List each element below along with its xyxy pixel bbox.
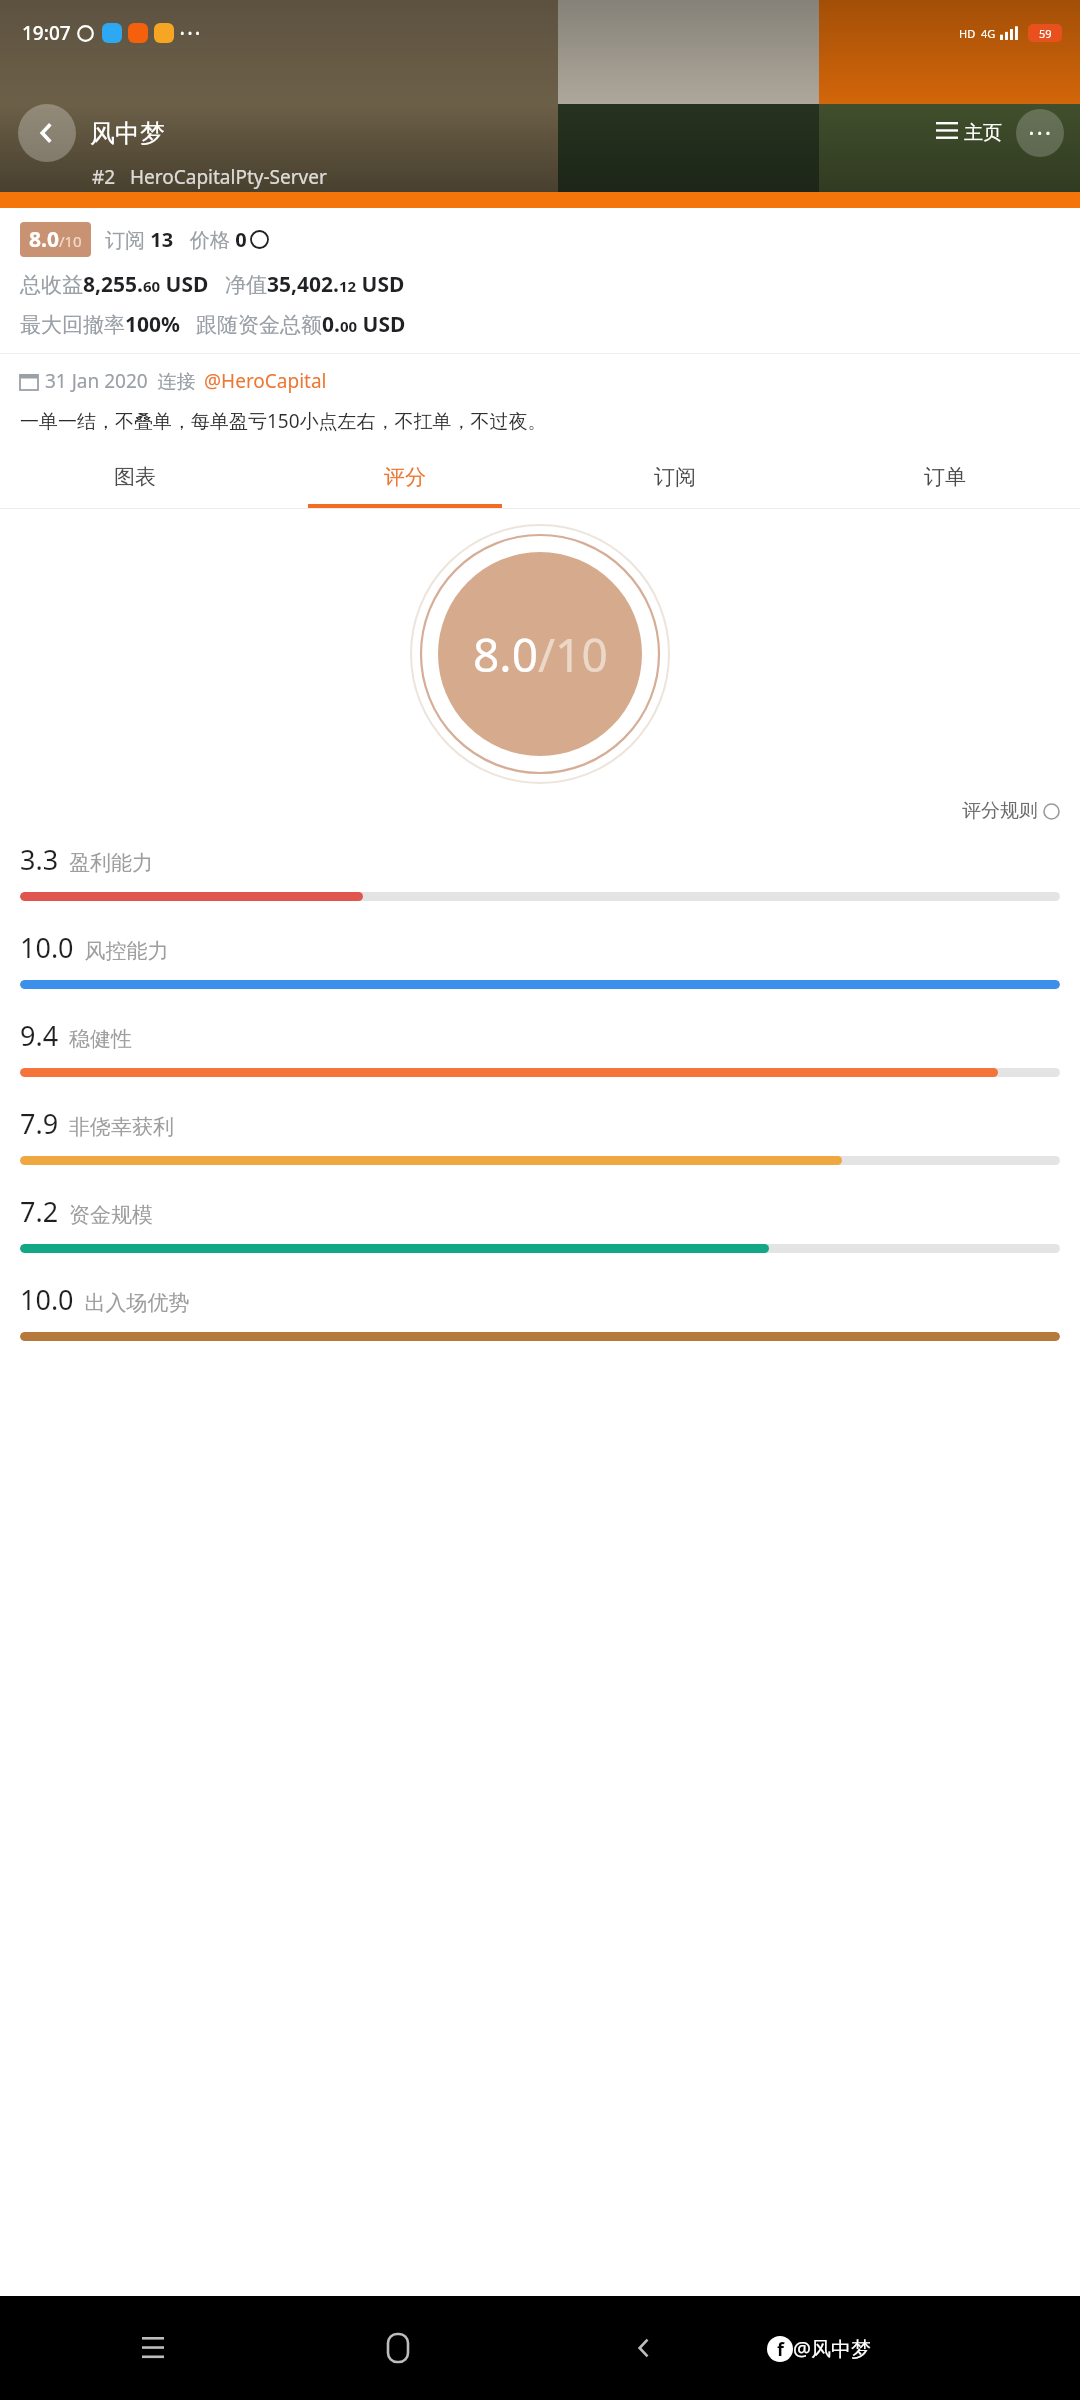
button[interactable]: 订单: [810, 446, 1080, 508]
button[interactable]: Recents: [131, 2326, 175, 2370]
staticText: 7.2 资金规模: [20, 1193, 154, 1230]
staticText: 图表: [114, 464, 156, 490]
staticText: 59: [1039, 26, 1052, 41]
staticText: 订单: [924, 464, 966, 490]
staticText: 10.0 风控能力: [20, 929, 169, 966]
staticText: 订阅 13: [105, 226, 174, 253]
staticText: f: [777, 2337, 784, 2362]
staticText: #2 HeroCapitalPty-Server: [92, 164, 327, 190]
staticText: 31 Jan 2020 连接: [45, 368, 196, 394]
staticText: 订阅: [654, 464, 696, 490]
staticText: 9.4 稳健性: [20, 1017, 133, 1054]
staticText: @风中梦: [793, 2335, 871, 2362]
button[interactable]: 订阅: [540, 446, 810, 508]
staticText: 风中梦: [90, 118, 165, 149]
button[interactable]: Back: [18, 104, 76, 162]
staticText: 8.0/10: [473, 623, 608, 686]
staticText: 4G: [981, 26, 996, 41]
staticText: 最大回撤率100%: [20, 310, 180, 339]
staticText: 净值35,402.12 USD: [225, 270, 405, 299]
button[interactable]: Home: [376, 2326, 420, 2370]
button[interactable]: Back: [622, 2326, 666, 2370]
staticText: 10.0 出入场优势: [20, 1281, 190, 1318]
button[interactable]: 评分规则: [962, 799, 1060, 823]
staticText: • • •: [1029, 124, 1051, 142]
button[interactable]: 图表: [0, 446, 270, 508]
staticText: 19:07: [22, 20, 71, 46]
button[interactable]: 主页: [936, 121, 1016, 145]
staticText: 一单一结，不叠单，每单盈亏150小点左右，不扛单，不过夜。: [20, 408, 547, 434]
staticText: 7.9 非侥幸获利: [20, 1105, 175, 1142]
staticText: 总收益8,255.60 USD: [20, 270, 209, 299]
button[interactable]: @HeroCapital: [204, 368, 327, 394]
staticText: HD: [959, 26, 976, 41]
staticText: 跟随资金总额0.00 USD: [196, 310, 406, 339]
staticText: 评分规则: [962, 799, 1038, 823]
button[interactable]: More: [1016, 109, 1064, 157]
staticText: • • •: [180, 25, 200, 41]
staticText: 3.3 盈利能力: [20, 841, 154, 878]
staticText: 8.0/10: [29, 225, 82, 254]
staticText: 评分: [384, 464, 426, 490]
button[interactable]: 评分: [270, 446, 540, 508]
staticText: 主页: [964, 121, 1002, 145]
staticText: 价格 0: [190, 226, 247, 253]
